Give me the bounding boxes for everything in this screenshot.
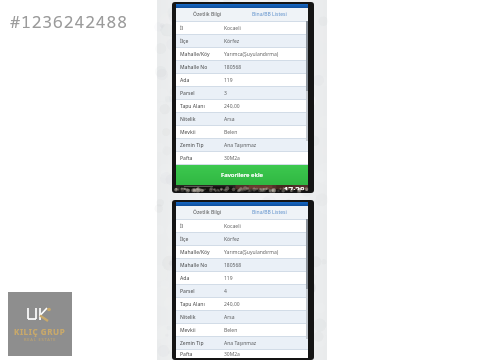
button[interactable]: Mevkii: [176, 126, 308, 138]
staticText: Mahalle/Köy: [180, 249, 210, 256]
staticText: Ana Taşınmaz: [224, 142, 257, 149]
button[interactable]: Tapu Alanı: [176, 100, 308, 112]
staticText: İl: [180, 25, 184, 32]
staticText: İlçe: [180, 236, 189, 243]
button[interactable]: Parsel: [176, 285, 308, 297]
staticText: Tapu Alanı: [180, 103, 205, 110]
staticText: 240,00: [224, 103, 240, 110]
button[interactable]: Ada: [176, 272, 308, 284]
staticText: Arsa: [224, 116, 235, 123]
staticText: Körfez: [224, 38, 240, 45]
staticText: Zemin Tip: [180, 142, 204, 149]
button[interactable]: Nitelik: [176, 113, 308, 125]
button[interactable]: Mahalle/Köy: [176, 246, 308, 258]
button[interactable]: Özetlik Bilgi: [176, 206, 238, 219]
staticText: Belen: [224, 129, 238, 136]
button[interactable]: Özetlik Bilgi: [176, 8, 238, 21]
button[interactable]: Bina/BB Listesi: [238, 206, 300, 219]
staticText: Bina/BB Listesi: [252, 11, 287, 18]
staticText: Favorilere ekle: [221, 171, 263, 179]
staticText: 3: [224, 90, 227, 97]
staticText: Körfez: [224, 236, 240, 243]
staticText: 119: [224, 77, 233, 84]
staticText: Ana Taşınmaz: [224, 340, 257, 347]
button[interactable]: İl: [176, 220, 308, 232]
button[interactable]: Mahalle No: [176, 259, 308, 271]
staticText: Bina/BB Listesi: [252, 209, 287, 216]
staticText: Parsel: [180, 288, 195, 295]
button[interactable]: Pafta: [176, 152, 308, 164]
staticText: Nitelik: [180, 116, 196, 123]
staticText: Kocaeli: [224, 223, 241, 230]
button[interactable]: Nitelik: [176, 311, 308, 323]
staticText: Mahalle No: [180, 64, 208, 71]
staticText: 180568: [224, 64, 242, 71]
staticText: Pafta: [180, 351, 193, 358]
button[interactable]: İlçe: [176, 233, 308, 245]
staticText: 180568: [224, 262, 242, 269]
staticText: 119: [224, 275, 233, 282]
staticText: 17:38: [284, 185, 305, 190]
staticText: Ada: [180, 77, 190, 84]
staticText: Mevkii: [180, 327, 196, 334]
staticText: #1236242488: [10, 10, 128, 33]
staticText: KILIÇ GRUP: [14, 326, 66, 337]
staticText: Özetlik Bilgi: [193, 209, 222, 216]
button[interactable]: Favorilere ekle: [176, 165, 308, 185]
button[interactable]: Mahalle No: [176, 61, 308, 73]
button[interactable]: Mahalle/Köy: [176, 48, 308, 60]
staticText: 30M2a: [224, 155, 240, 162]
staticText: Kocaeli: [224, 25, 241, 32]
button[interactable]: Pafta: [176, 350, 308, 358]
staticText: Parsel: [180, 90, 195, 97]
staticText: İlçe: [180, 38, 189, 45]
staticText: Nitelik: [180, 314, 196, 321]
staticText: 240,00: [224, 301, 240, 308]
button[interactable]: İlçe: [176, 35, 308, 47]
staticText: Mahalle/Köy: [180, 51, 210, 58]
staticText: Tapu Alanı: [180, 301, 205, 308]
staticText: Belen: [224, 327, 238, 334]
staticText: Yarımca(Şuyulandırma): [224, 249, 279, 256]
button[interactable]: Tapu Alanı: [176, 298, 308, 310]
button[interactable]: Kılıç Grup logo: [8, 292, 72, 356]
staticText: Mevkii: [180, 129, 196, 136]
staticText: Yarımca(Şuyulandırma): [224, 51, 279, 58]
button[interactable]: Zemin Tip: [176, 337, 308, 349]
staticText: Ada: [180, 275, 190, 282]
staticText: REAL ESTATE: [24, 337, 57, 342]
button[interactable]: Ada: [176, 74, 308, 86]
staticText: Mahalle No: [180, 262, 208, 269]
button[interactable]: Parsel: [176, 87, 308, 99]
staticText: Arsa: [224, 314, 235, 321]
staticText: 4: [224, 288, 227, 295]
button[interactable]: İl: [176, 22, 308, 34]
staticText: Pafta: [180, 155, 193, 162]
staticText: Zemin Tip: [180, 340, 204, 347]
staticText: İl: [180, 223, 184, 230]
button[interactable]: Bina/BB Listesi: [238, 8, 300, 21]
staticText: Özetlik Bilgi: [193, 11, 222, 18]
button[interactable]: Mevkii: [176, 324, 308, 336]
staticText: 30M2a: [224, 351, 240, 358]
button[interactable]: Zemin Tip: [176, 139, 308, 151]
